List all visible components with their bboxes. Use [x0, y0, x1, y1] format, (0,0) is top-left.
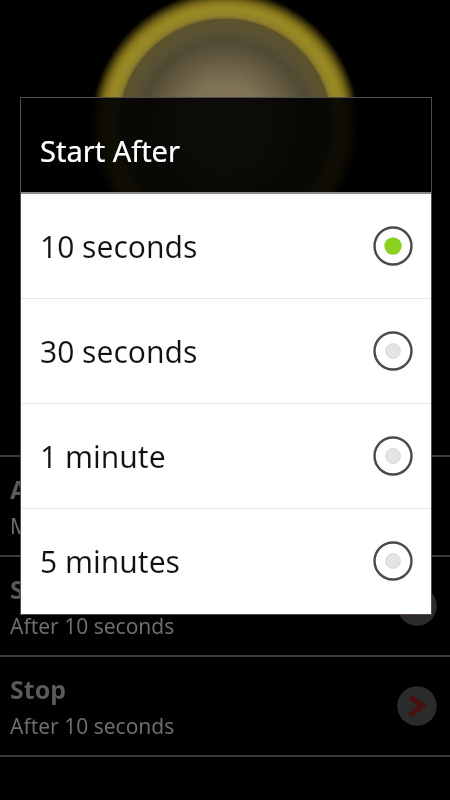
staticText: 30 seconds [40, 331, 371, 372]
other: Not selected [371, 329, 415, 373]
other: Not selected [371, 539, 415, 583]
staticText: 10 seconds [40, 226, 371, 267]
other: Not selected [371, 434, 415, 478]
button[interactable]: Stop [0, 657, 450, 755]
staticText: Stop [10, 672, 67, 706]
staticText: After 10 seconds [10, 712, 175, 741]
button[interactable]: Alert [0, 457, 450, 555]
staticText: Alert [10, 472, 72, 506]
staticText: After 10 seconds [10, 612, 175, 641]
button[interactable]: 30 seconds [20, 299, 432, 403]
button[interactable]: 1 minute [20, 404, 432, 508]
staticText: 1 minute [40, 436, 371, 477]
staticText: 5 minutes [40, 541, 371, 582]
staticText: Medium [10, 512, 92, 541]
button[interactable]: Start [0, 557, 450, 655]
button[interactable]: 5 minutes [20, 509, 432, 613]
other: Selected [371, 224, 415, 268]
staticText: Start [10, 572, 72, 606]
staticText: Start After [40, 131, 180, 170]
button[interactable]: 10 seconds [20, 194, 432, 298]
